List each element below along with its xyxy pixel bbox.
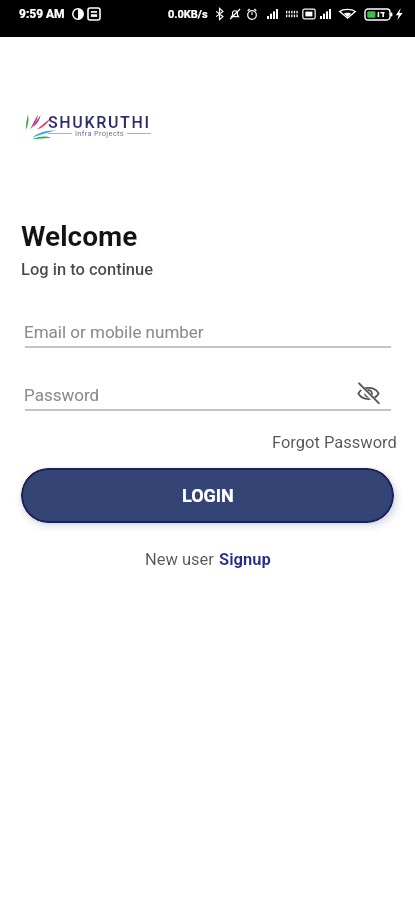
staticText: LOGIN: [182, 485, 234, 506]
staticText: Welcome: [21, 220, 138, 253]
staticText: Email or mobile number: [24, 322, 204, 342]
button[interactable]: Signup: [219, 550, 271, 569]
staticText: Infra Projects: [75, 129, 124, 138]
staticText: Log in to continue: [21, 260, 154, 279]
button[interactable]: Email or mobile number: [24, 314, 391, 342]
staticText: 0.0KB/s: [168, 8, 208, 21]
button[interactable]: Password: [24, 377, 349, 405]
staticText: SHUKRUTHI: [48, 113, 151, 132]
staticText: Signup: [219, 550, 271, 569]
button[interactable]: Forgot Password: [272, 433, 397, 452]
button[interactable]: LOGIN: [21, 468, 394, 523]
button[interactable]: Show password: [356, 381, 381, 406]
staticText: Forgot Password: [272, 433, 397, 452]
staticText: 9:59 AM: [19, 7, 65, 21]
staticText: New user: [145, 550, 219, 569]
staticText: Password: [24, 385, 100, 405]
